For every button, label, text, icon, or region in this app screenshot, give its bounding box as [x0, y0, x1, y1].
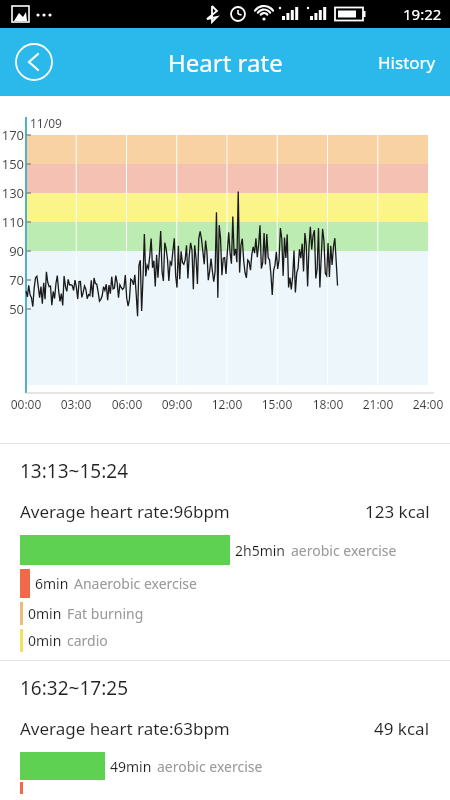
staticText: 170 — [0, 126, 24, 144]
button[interactable]: Back — [12, 40, 56, 84]
staticText: aerobic exercise — [291, 541, 397, 560]
staticText: Heart rate — [168, 46, 283, 79]
staticText: 150 — [0, 155, 24, 173]
staticText: 49 kcal — [374, 717, 430, 740]
staticText: 00:00 — [4, 396, 48, 412]
staticText: 24:00 — [406, 396, 450, 412]
staticText: 11/09 — [30, 115, 62, 131]
staticText: aerobic exercise — [157, 757, 263, 776]
staticText: 70 — [0, 271, 24, 289]
button[interactable]: History — [364, 37, 450, 88]
staticText: 123 kcal — [365, 500, 430, 523]
staticText: 15:00 — [255, 396, 299, 412]
staticText: 130 — [0, 184, 24, 202]
staticText: 0min — [28, 604, 62, 623]
staticText: 90 — [0, 242, 24, 260]
staticText: Average heart rate:63bpm — [20, 717, 230, 740]
button[interactable]: 16:32~17:25 — [0, 661, 450, 800]
staticText: 110 — [0, 213, 24, 231]
staticText: 03:00 — [54, 396, 98, 412]
button[interactable]: 13:13~15:24 — [0, 444, 450, 660]
staticText: Fat burning — [67, 604, 144, 623]
staticText: cardio — [67, 631, 108, 650]
staticText: 13:13~15:24 — [20, 458, 128, 484]
staticText: 09:00 — [155, 396, 199, 412]
staticText: History — [378, 51, 436, 74]
staticText: Average heart rate:96bpm — [20, 500, 230, 523]
staticText: 6min — [35, 574, 69, 593]
staticText: 49min — [110, 757, 152, 776]
staticText: 12:00 — [205, 396, 249, 412]
staticText: 21:00 — [356, 396, 400, 412]
staticText: 19:22 — [403, 4, 442, 24]
staticText: Anaerobic exercise — [74, 574, 197, 593]
staticText: 06:00 — [105, 396, 149, 412]
staticText: 16:32~17:25 — [20, 675, 128, 701]
staticText: 2h5min — [235, 541, 286, 560]
staticText: 50 — [0, 300, 24, 318]
staticText: 0min — [28, 631, 62, 650]
staticText: 18:00 — [306, 396, 350, 412]
